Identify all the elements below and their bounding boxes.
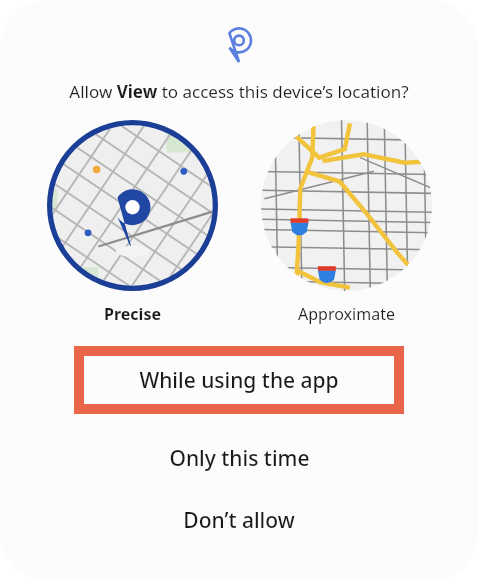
staticText: Only this time — [169, 444, 310, 473]
button[interactable]: While using the app — [84, 356, 394, 404]
other: Location — [219, 26, 259, 66]
button[interactable]: Approximate — [239, 120, 453, 325]
button[interactable]: Precise — [25, 120, 239, 325]
button[interactable]: Don’t allow — [0, 498, 478, 542]
staticText: Approximate — [298, 303, 395, 325]
button[interactable]: Only this time — [0, 436, 478, 480]
staticText: Precise — [104, 303, 161, 325]
staticText: While using the app — [139, 366, 339, 395]
staticText: Allow View to access this device’s locat… — [20, 80, 458, 103]
staticText: Don’t allow — [183, 506, 295, 535]
